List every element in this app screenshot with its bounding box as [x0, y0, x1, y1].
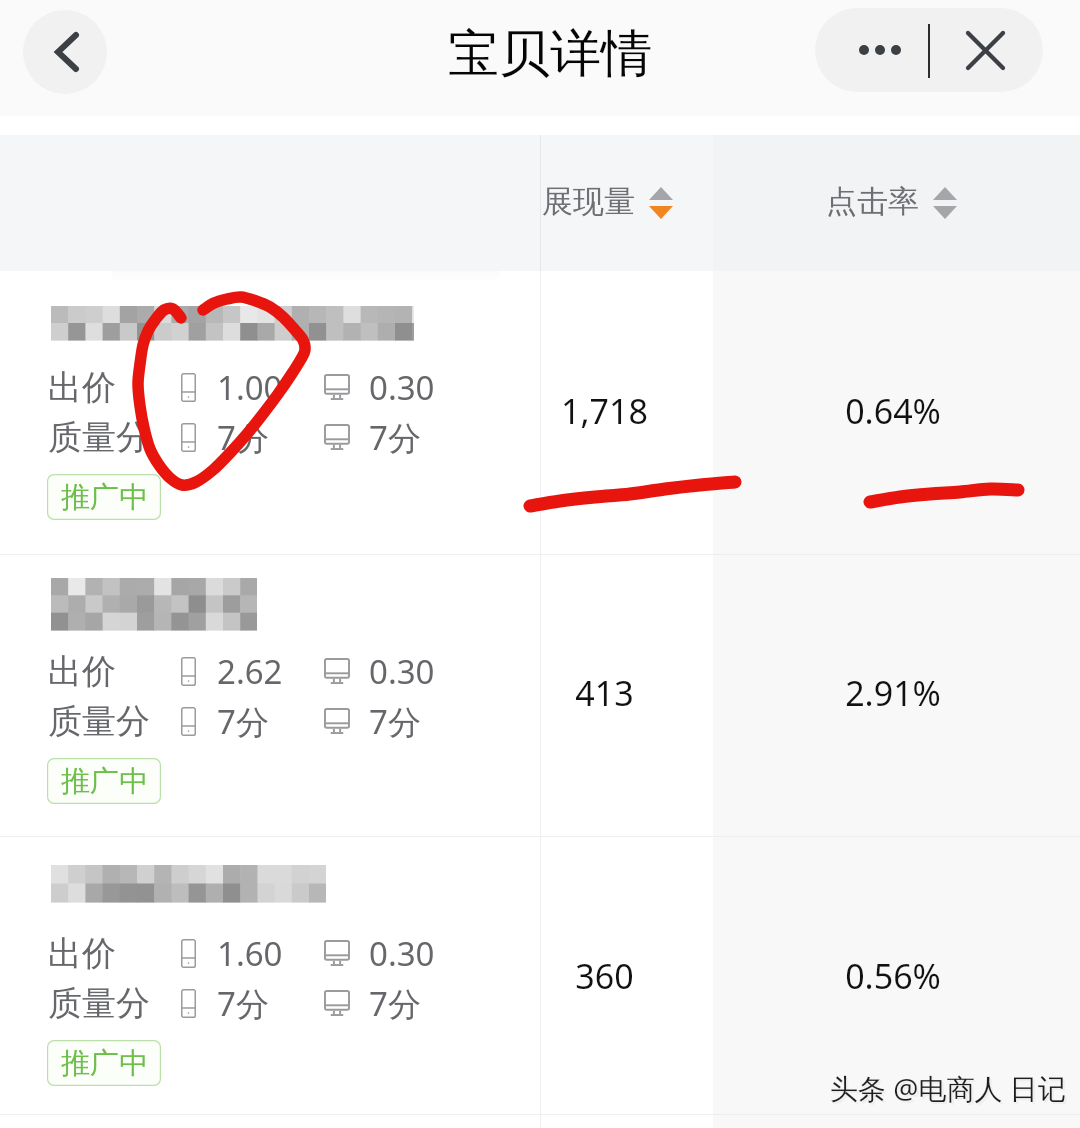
staticText: 质量分: [48, 700, 150, 743]
staticText: 出价: [48, 366, 116, 409]
button[interactable]: 点击率: [826, 135, 957, 271]
button[interactable]: 推广中: [47, 758, 161, 804]
staticText: 360: [575, 953, 634, 999]
staticText: 1,718: [561, 388, 648, 434]
staticText: 质量分: [48, 416, 150, 459]
staticText: 0.30: [369, 365, 435, 410]
button[interactable]: 推广中: [47, 474, 161, 520]
button[interactable]: 出价: [0, 837, 1080, 1115]
staticText: 0.64%: [845, 388, 941, 434]
staticText: 质量分: [48, 982, 150, 1025]
staticText: 7分: [217, 981, 269, 1026]
button[interactable]: More options: [815, 8, 929, 92]
staticText: 0.30: [369, 649, 435, 694]
staticText: 7分: [369, 981, 421, 1026]
staticText: 7分: [217, 699, 269, 744]
button[interactable]: 展现量: [542, 135, 673, 271]
staticText: 推广中: [61, 479, 148, 516]
staticText: 0.56%: [845, 953, 941, 999]
staticText: 推广中: [61, 763, 148, 800]
staticText: 7分: [369, 415, 421, 460]
staticText: 出价: [48, 650, 116, 693]
staticText: 出价: [48, 932, 116, 975]
staticText: 0.30: [369, 931, 435, 976]
staticText: 2.91%: [845, 670, 941, 716]
staticText: 宝贝详情: [448, 22, 652, 86]
staticText: 头条 @电商人 日记: [832, 1071, 1068, 1109]
button[interactable]: 出价: [0, 271, 1080, 555]
staticText: 2.62: [217, 649, 283, 694]
staticText: 推广中: [61, 1045, 148, 1082]
staticText: 头条 @电商人 日记: [830, 1069, 1066, 1107]
staticText: 7分: [369, 699, 421, 744]
staticText: 7分: [217, 415, 269, 460]
button[interactable]: 出价: [0, 555, 1080, 837]
staticText: 413: [575, 670, 634, 716]
staticText: 1.60: [217, 931, 283, 976]
button[interactable]: 推广中: [47, 1040, 161, 1086]
staticText: 1.00: [217, 365, 283, 410]
staticText: 展现量: [542, 182, 635, 221]
button[interactable]: Back: [23, 10, 107, 94]
staticText: 点击率: [826, 182, 919, 221]
button[interactable]: Close: [929, 8, 1043, 92]
